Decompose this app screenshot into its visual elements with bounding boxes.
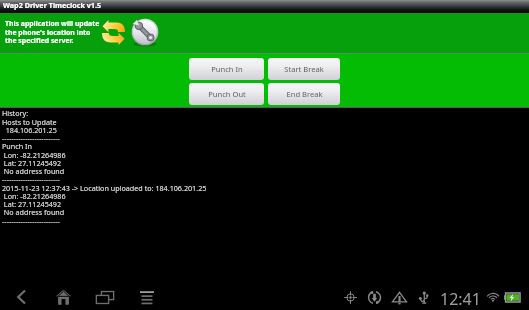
staticText: Punch In: [2, 141, 32, 151]
staticText: Lat: 27.11245492: [2, 158, 62, 168]
button[interactable]: Back: [0, 281, 42, 310]
staticText: Hosts to Update: [2, 117, 57, 127]
staticText: No address found: [2, 207, 65, 217]
staticText: No address found: [2, 166, 65, 176]
staticText: -------------------------: [2, 216, 60, 226]
staticText: Punch In: [211, 64, 243, 74]
staticText: Lat: 27.11245492: [2, 199, 62, 209]
staticText: -------------------------: [2, 174, 60, 184]
staticText: Wap2 Driver Timeclock v1.5: [3, 0, 102, 10]
button[interactable]: Punch In: [189, 58, 264, 80]
staticText: 12:41: [440, 288, 481, 310]
staticText: 2015-11-23 12:37:43 -> Location uploaded…: [2, 183, 207, 193]
button[interactable]: Start Break: [268, 58, 340, 80]
staticText: Start Break: [284, 64, 324, 74]
button[interactable]: Punch Out: [189, 83, 264, 105]
staticText: Lon: -82.21264986: [2, 150, 66, 160]
staticText: Lon: -82.21264986: [2, 191, 66, 201]
staticText: History:: [2, 108, 29, 118]
staticText: 184.106.201.25: [2, 125, 57, 135]
button[interactable]: Menu: [126, 281, 168, 310]
staticText: This application will update the phone's…: [5, 19, 100, 45]
button[interactable]: Recent apps: [84, 281, 126, 310]
button[interactable]: End Break: [268, 83, 340, 105]
staticText: -------------------------: [2, 133, 60, 143]
staticText: End Break: [286, 89, 323, 99]
button[interactable]: Home: [42, 281, 84, 310]
staticText: Punch Out: [208, 89, 246, 99]
